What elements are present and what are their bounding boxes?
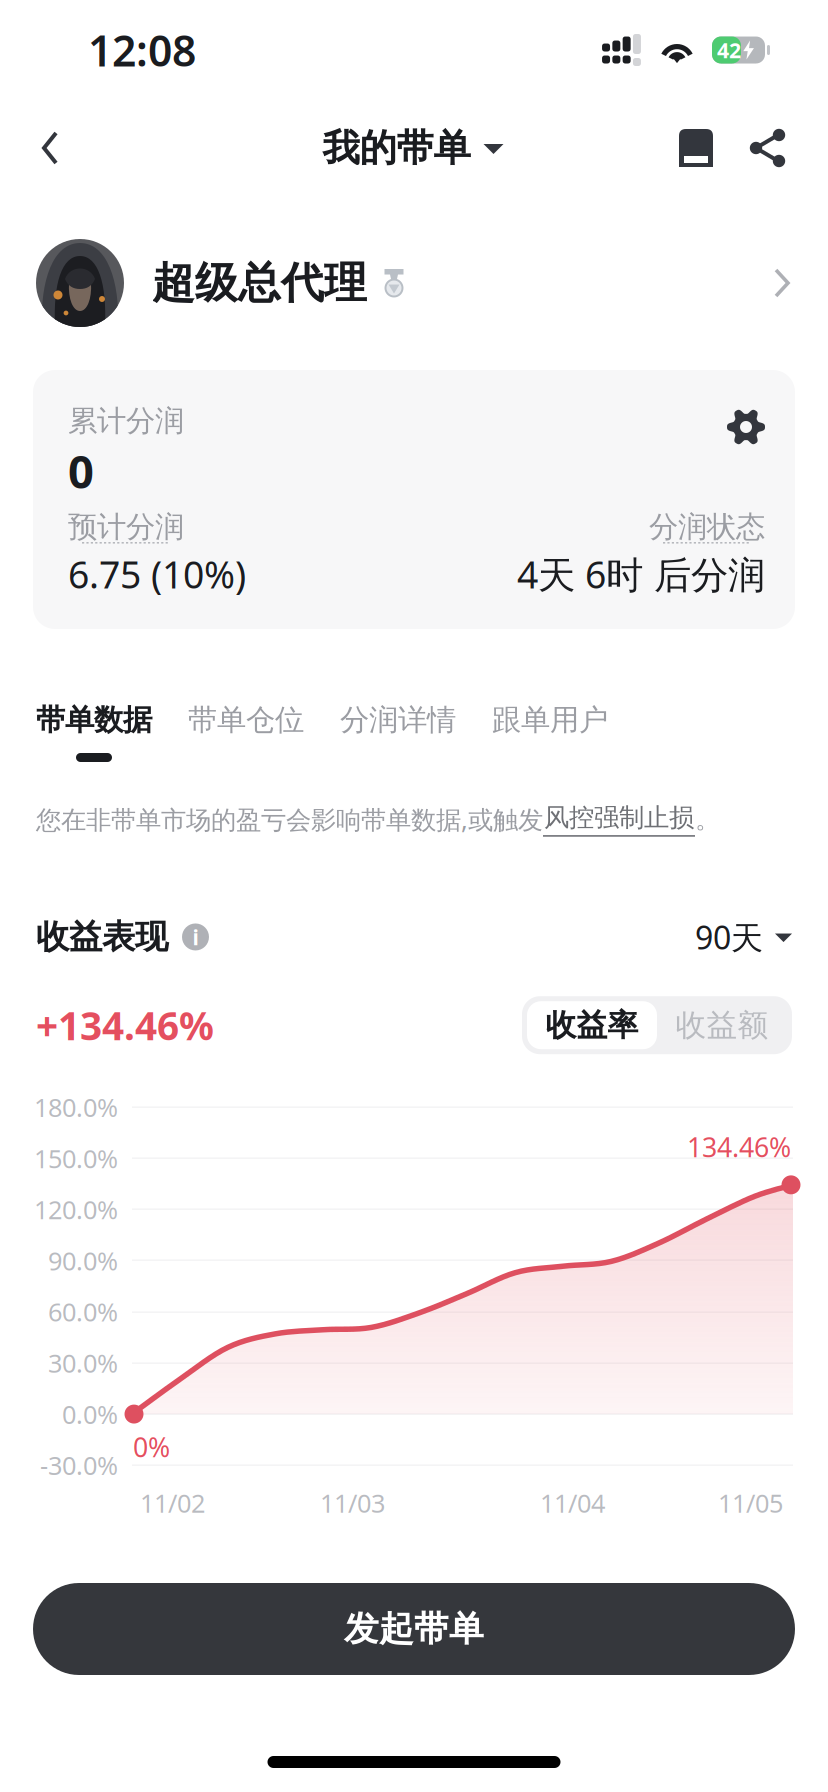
staticText: 180.0% [34,1090,118,1124]
staticText: 0 [68,441,94,501]
staticText: 分润详情 [340,702,456,738]
button[interactable]: 90天 [695,916,792,958]
staticText: 12:08 [88,22,196,78]
staticText: -30.0% [40,1448,118,1482]
button[interactable]: 分润详情 [340,705,456,762]
staticText: 30.0% [48,1346,118,1380]
staticText: 11/04 [540,1486,605,1520]
button[interactable]: 我的带单 [310,100,515,196]
staticText: 150.0% [34,1141,118,1175]
staticText: 6.75 (10%) [68,549,246,599]
button[interactable]: 风控强制止损 [543,802,695,837]
staticText: 带单仓位 [188,702,304,738]
staticText: 收益表现 [36,916,168,957]
button[interactable]: 带单数据 [36,705,152,762]
staticText: +134.46% [36,999,214,1051]
staticText: 超级总代理 [152,257,367,309]
staticText: 60.0% [48,1295,118,1329]
staticText: 您在非带单市场的盈亏会影响带单数据,或触发 [36,802,543,836]
staticText: 0.0% [62,1397,118,1431]
button[interactable]: 带单仓位 [188,705,304,762]
staticText: 42 [717,36,741,64]
staticText: 90天 [695,916,763,958]
staticText: 分润状态 [649,509,765,545]
button[interactable]: 超级总代理 [0,196,828,370]
staticText: 发起带单 [344,1608,484,1650]
button[interactable]: 跟单用户 [492,705,608,762]
staticText: 带单数据 [36,702,152,738]
staticText: 累计分润 [68,403,184,439]
button[interactable]: Share [740,100,796,196]
button[interactable]: Notebook [666,100,726,196]
staticText: 收益率 [545,1006,638,1044]
staticText: 11/03 [320,1486,385,1520]
staticText: 收益额 [675,1006,768,1044]
staticText: 我的带单 [322,125,470,171]
button[interactable]: 收益率 [527,1001,657,1049]
staticText: 90.0% [48,1244,118,1277]
staticText: 11/02 [140,1486,205,1520]
button[interactable]: 发起带单 [33,1583,795,1675]
staticText: 120.0% [34,1193,118,1226]
staticText: 预计分润 [68,509,184,545]
button[interactable]: 收益额 [657,1001,787,1049]
button[interactable]: Back [19,100,81,196]
staticText: 风控强制止损 [544,802,694,833]
staticText: 4天 6时 后分润 [517,549,765,599]
button[interactable]: Settings [727,406,765,446]
staticText: 跟单用户 [492,702,608,738]
staticText: i [192,923,198,951]
staticText: 11/05 [718,1486,783,1520]
staticText: 0% [133,1429,170,1465]
staticText: 134.46% [687,1129,791,1165]
staticText: 。 [695,804,720,835]
